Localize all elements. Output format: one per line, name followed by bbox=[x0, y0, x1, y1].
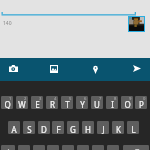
button[interactable]: S bbox=[23, 121, 35, 134]
staticText: D bbox=[41, 124, 47, 134]
staticText: I bbox=[111, 99, 114, 109]
staticText: A bbox=[11, 124, 17, 134]
staticText: K bbox=[116, 124, 121, 134]
button[interactable]: D bbox=[38, 121, 50, 134]
button[interactable]: B bbox=[77, 145, 89, 150]
staticText: Y bbox=[80, 99, 85, 109]
staticText: 7 bbox=[99, 96, 102, 102]
staticText: 9 bbox=[129, 96, 132, 102]
button[interactable]: V bbox=[62, 145, 74, 150]
button[interactable]: N bbox=[92, 145, 104, 150]
staticText: 3 bbox=[39, 96, 42, 102]
button[interactable]: Z bbox=[18, 145, 30, 150]
staticText: W bbox=[18, 99, 26, 109]
button[interactable]: Backspace bbox=[123, 145, 149, 150]
staticText: E bbox=[35, 99, 40, 109]
button[interactable]: Send bbox=[123, 58, 150, 81]
button[interactable]: Shift bbox=[1, 145, 15, 150]
staticText: 6 bbox=[84, 96, 87, 102]
staticText: 140 bbox=[3, 20, 12, 27]
button[interactable]: O bbox=[121, 96, 133, 109]
button[interactable]: E bbox=[31, 96, 43, 109]
staticText: J bbox=[102, 124, 105, 134]
staticText: 8 bbox=[114, 96, 117, 102]
button[interactable]: C bbox=[47, 145, 59, 150]
staticText: S bbox=[27, 124, 32, 134]
button[interactable]: Q bbox=[1, 96, 13, 109]
button[interactable]: T bbox=[61, 96, 73, 109]
staticText: 2 bbox=[24, 96, 27, 102]
staticText: R bbox=[50, 99, 55, 109]
button[interactable]: R bbox=[46, 96, 58, 109]
staticText: P bbox=[139, 99, 144, 109]
button[interactable]: H bbox=[82, 121, 94, 134]
button[interactable]: Add location bbox=[81, 58, 109, 81]
button[interactable]: Take photo bbox=[0, 58, 27, 81]
staticText: 4 bbox=[54, 96, 57, 102]
staticText: G bbox=[70, 124, 76, 134]
button[interactable]: I bbox=[106, 96, 118, 109]
button[interactable]: P bbox=[135, 96, 147, 109]
staticText: 5 bbox=[69, 96, 72, 102]
button[interactable]: U bbox=[91, 96, 103, 109]
staticText: 0 bbox=[143, 96, 146, 102]
staticText: F bbox=[56, 124, 61, 134]
button[interactable]: G bbox=[67, 121, 79, 134]
staticText: Q bbox=[4, 99, 11, 109]
button[interactable]: W bbox=[16, 96, 28, 109]
staticText: U bbox=[94, 99, 100, 109]
button[interactable]: K bbox=[112, 121, 124, 134]
staticText: H bbox=[85, 124, 91, 134]
button[interactable]: J bbox=[97, 121, 109, 134]
button[interactable]: A bbox=[8, 121, 20, 134]
staticText: L bbox=[131, 124, 136, 134]
staticText: 1 bbox=[9, 96, 12, 102]
staticText: O bbox=[124, 99, 131, 109]
button[interactable]: L bbox=[127, 121, 139, 134]
button[interactable]: Profile photo bbox=[129, 17, 144, 31]
button[interactable]: M bbox=[107, 145, 119, 150]
button[interactable]: X bbox=[33, 145, 45, 150]
staticText: T bbox=[65, 99, 70, 109]
button[interactable]: F bbox=[52, 121, 64, 134]
button[interactable]: Y bbox=[76, 96, 88, 109]
button[interactable]: Attach image bbox=[40, 58, 68, 81]
